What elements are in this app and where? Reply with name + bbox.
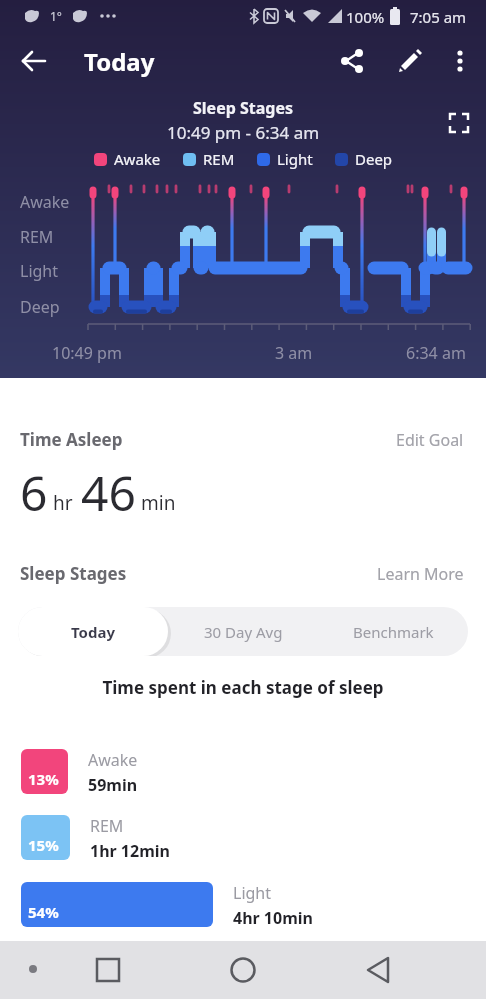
staticText: 10:49 pm - 6:34 am <box>0 121 486 144</box>
staticText: 10:49 pm <box>52 342 122 364</box>
button[interactable]: Today <box>18 607 168 656</box>
button[interactable] <box>390 41 430 81</box>
staticText: Deep <box>355 149 393 169</box>
staticText: Awake <box>114 149 161 169</box>
staticText: Awake <box>20 191 70 213</box>
button[interactable]: 15% <box>21 815 70 860</box>
staticText: Edit Goal <box>396 429 464 451</box>
button[interactable]: 54% <box>21 882 213 927</box>
button[interactable] <box>440 41 480 81</box>
staticText: 3 am <box>275 342 313 364</box>
button[interactable] <box>14 41 54 81</box>
staticText: 46 <box>81 460 136 525</box>
staticText: REM <box>20 226 54 248</box>
staticText: Sleep Stages <box>20 562 127 585</box>
button[interactable] <box>221 948 265 992</box>
staticText: min <box>141 490 176 516</box>
button[interactable]: 13% <box>21 749 68 794</box>
button[interactable]: Benchmark <box>318 607 468 656</box>
staticText: 100% <box>346 7 385 27</box>
staticText: Light <box>233 882 272 904</box>
staticText: Sleep Stages <box>0 97 486 119</box>
staticText: 6 <box>20 460 48 525</box>
staticText: REM <box>90 815 124 837</box>
staticText: 30 Day Avg <box>204 622 283 642</box>
button[interactable] <box>356 948 400 992</box>
staticText: Today <box>71 622 116 642</box>
staticText: 7:05 am <box>410 7 467 27</box>
staticText: Time spent in each stage of sleep <box>0 676 486 699</box>
staticText: Awake <box>88 749 138 771</box>
staticText: 1hr 12min <box>90 840 170 862</box>
staticText: REM <box>203 149 235 169</box>
staticText: Light <box>20 260 59 282</box>
button[interactable]: 30 Day Avg <box>168 607 318 656</box>
staticText: hr <box>53 490 73 516</box>
button[interactable] <box>443 107 475 139</box>
staticText: Deep <box>20 296 60 318</box>
staticText: 4hr 10min <box>233 907 313 929</box>
staticText: Time Asleep <box>20 428 123 451</box>
staticText: 1° <box>50 8 63 24</box>
staticText: 59min <box>88 774 138 796</box>
staticText: Benchmark <box>353 622 434 642</box>
staticText: Light <box>277 149 313 169</box>
staticText: 15% <box>28 835 59 855</box>
staticText: Today <box>84 45 155 78</box>
staticText: 13% <box>28 769 59 789</box>
staticText: Learn More <box>377 563 464 585</box>
button[interactable] <box>332 41 372 81</box>
staticText: 54% <box>28 902 59 922</box>
button[interactable] <box>390 424 470 452</box>
button[interactable] <box>370 556 470 584</box>
staticText: 6:34 am <box>406 342 466 364</box>
button[interactable] <box>86 948 130 992</box>
